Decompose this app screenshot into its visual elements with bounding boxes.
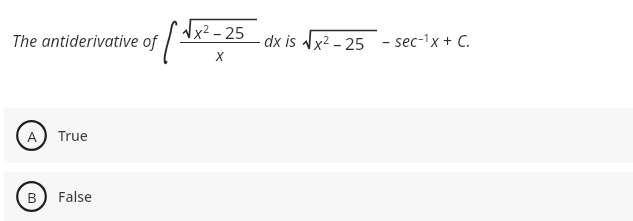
staticText: False (58, 187, 93, 206)
staticText: x (216, 44, 224, 66)
staticText: –1 (418, 30, 430, 45)
staticText: 2 (323, 32, 330, 47)
staticText: – (213, 21, 222, 44)
staticText: sec (395, 30, 418, 52)
staticText: – (382, 30, 391, 52)
staticText: The antiderivative of (12, 30, 157, 52)
staticText: x (194, 21, 203, 44)
staticText: – (333, 32, 342, 55)
button[interactable]: A (4, 108, 633, 163)
staticText: 25 (345, 32, 365, 55)
staticText: 2 (203, 21, 210, 36)
staticText: True (58, 126, 88, 145)
staticText: C. (457, 30, 471, 52)
staticText: 25 (225, 21, 245, 44)
staticText: x (431, 30, 439, 52)
staticText: A (27, 126, 37, 146)
staticText: dx is (264, 30, 297, 52)
staticText: B (27, 187, 37, 207)
button[interactable]: B (4, 172, 633, 221)
staticText: x (314, 32, 323, 55)
staticText: + (443, 30, 453, 52)
